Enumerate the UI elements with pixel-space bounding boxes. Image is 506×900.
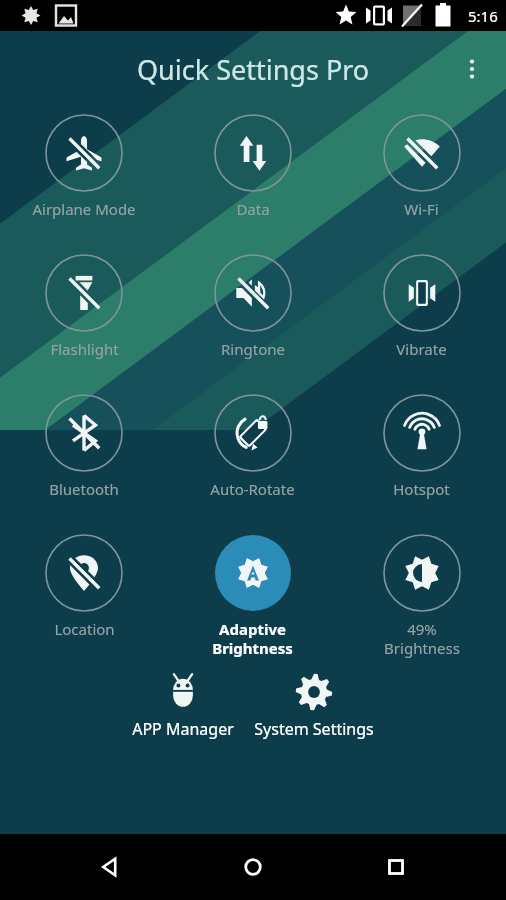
- button[interactable]: Home: [220, 834, 286, 900]
- staticText: Wi-Fi: [404, 199, 439, 219]
- staticText: Adaptive Brightness: [212, 619, 293, 658]
- button[interactable]: Adaptive Brightness: [168, 527, 337, 667]
- staticText: Vibrate: [396, 339, 447, 359]
- button[interactable]: Ringtone: [168, 247, 337, 387]
- button[interactable]: Data: [168, 107, 337, 247]
- staticText: Flashlight: [50, 339, 119, 359]
- button[interactable]: Auto-Rotate: [168, 387, 337, 527]
- button[interactable]: 49% Brightness: [337, 527, 506, 667]
- button[interactable]: More options: [450, 47, 494, 91]
- staticText: Ringtone: [221, 339, 285, 359]
- staticText: Location: [54, 619, 115, 639]
- button[interactable]: Vibrate: [337, 247, 506, 387]
- staticText: Data: [236, 199, 270, 219]
- button[interactable]: APP Manager: [124, 671, 242, 742]
- staticText: 5:16: [468, 6, 498, 26]
- staticText: System Settings: [254, 718, 374, 740]
- button[interactable]: Hotspot: [337, 387, 506, 527]
- button[interactable]: Back: [77, 834, 143, 900]
- button[interactable]: Airplane Mode: [0, 107, 168, 247]
- staticText: Auto-Rotate: [210, 479, 295, 499]
- staticText: Hotspot: [393, 479, 450, 499]
- staticText: Quick Settings Pro: [137, 51, 370, 88]
- staticText: 49% Brightness: [384, 619, 460, 658]
- button[interactable]: Bluetooth: [0, 387, 168, 527]
- staticText: Airplane Mode: [32, 199, 136, 219]
- button[interactable]: Wi-Fi: [337, 107, 506, 247]
- button[interactable]: Recents: [363, 834, 429, 900]
- button[interactable]: Flashlight: [0, 247, 168, 387]
- staticText: Bluetooth: [49, 479, 119, 499]
- button[interactable]: System Settings: [246, 671, 382, 742]
- button[interactable]: Location: [0, 527, 168, 667]
- staticText: APP Manager: [132, 718, 234, 740]
